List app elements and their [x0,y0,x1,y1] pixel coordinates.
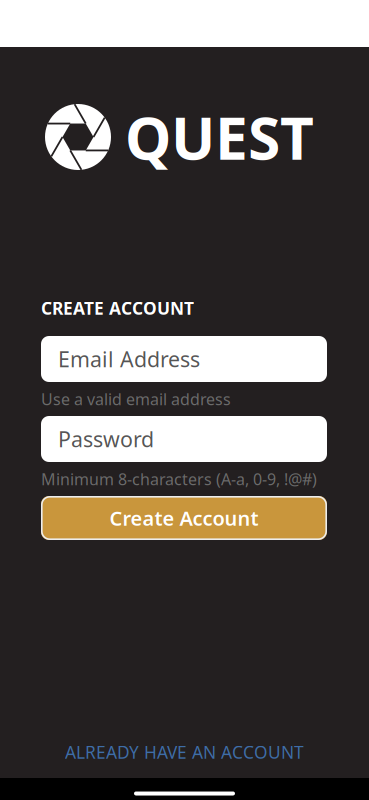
staticText: Create Account [109,505,258,531]
staticText: Email Address [58,345,200,373]
button[interactable]: ALREADY HAVE AN ACCOUNT [0,739,369,765]
staticText: Minimum 8-characters (A-a, 0-9, !@#) [41,468,317,490]
staticText: CREATE ACCOUNT [41,296,194,319]
staticText: Use a valid email address [41,388,231,410]
staticText: QUEST [125,98,314,176]
staticText: Password [58,425,154,453]
button[interactable]: Password [41,416,327,462]
button[interactable]: Create Account [41,496,327,540]
staticText: ALREADY HAVE AN ACCOUNT [65,740,304,763]
button[interactable]: Email Address [41,336,327,382]
